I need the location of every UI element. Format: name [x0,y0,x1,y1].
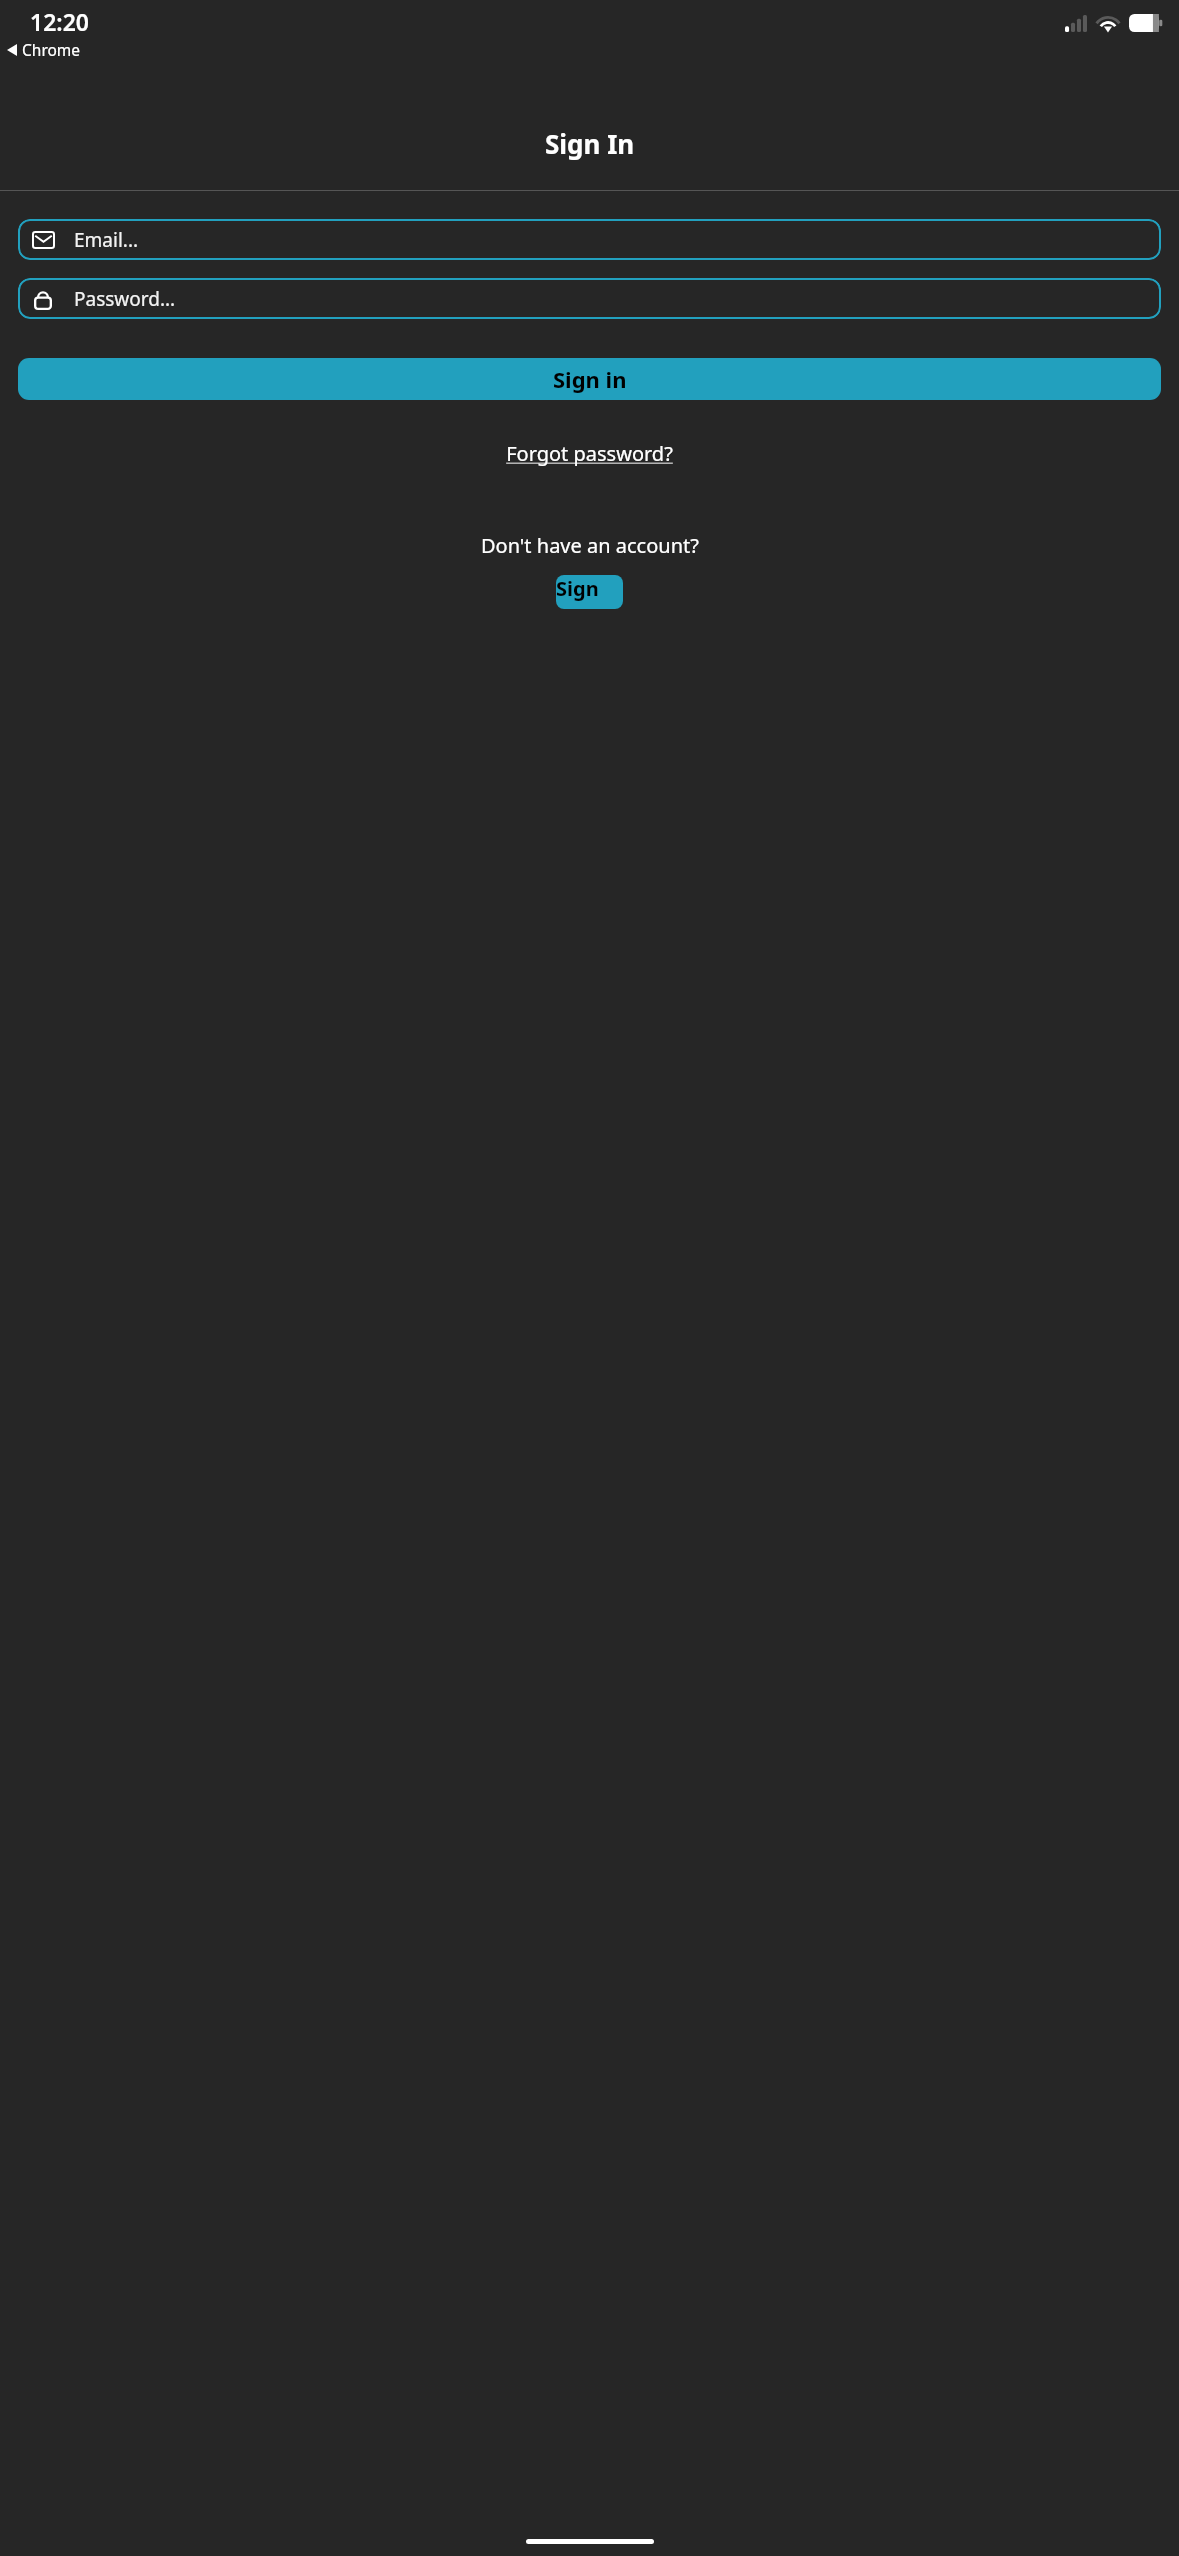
staticText: Forgot password? [506,440,673,467]
staticText: Sign in [553,364,627,394]
button[interactable]: Sign in [18,358,1161,400]
other: Wi-Fi [1097,15,1119,32]
staticText: Password... [74,286,176,312]
staticText: 12:20 [30,6,89,37]
staticText: Don't have an account? [481,532,699,559]
staticText: Sign up [556,575,623,609]
other: Battery 86 percent [1129,14,1163,32]
button[interactable]: Password... [18,278,1161,319]
staticText: Chrome [22,39,81,60]
button[interactable]: Forgot password? [500,436,679,471]
other: Cellular signal [1065,15,1087,32]
staticText: Sign In [545,126,635,161]
button[interactable]: Email... [18,219,1161,260]
button[interactable]: Sign up [556,575,623,609]
staticText: Email... [74,227,139,253]
